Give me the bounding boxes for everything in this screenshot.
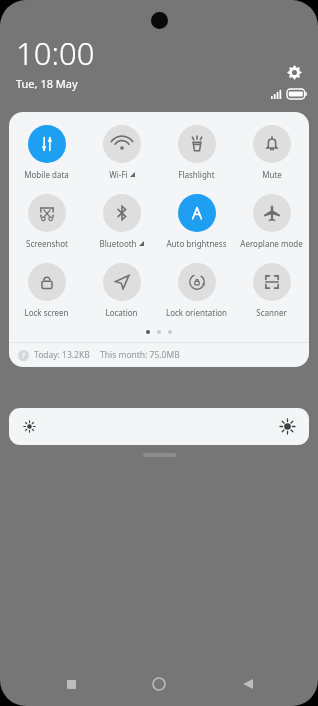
staticText: Screenshot [26,238,68,249]
button[interactable]: Brightness [9,408,309,445]
staticText: Today: 13.2KB [34,349,90,361]
staticText: 10:00 [16,32,95,74]
button[interactable]: Flashlight [159,123,234,182]
button[interactable]: ? [9,343,309,367]
button[interactable]: Screenshot [9,192,84,251]
button[interactable]: Bluetooth [84,192,159,251]
button[interactable]: Mute [234,123,309,182]
staticText: Mute [262,169,282,180]
button[interactable]: Mobile data [9,123,84,182]
staticText: Scanner [256,307,287,318]
staticText: Wi-Fi [109,169,128,180]
staticText: Mobile data [24,169,69,180]
button[interactable]: Recents [53,666,89,702]
staticText: Location [105,307,138,318]
staticText: Lock screen [24,307,69,318]
staticText: Aeroplane mode [240,238,303,249]
button[interactable]: Auto brightness [159,192,234,251]
button[interactable]: Home [141,666,177,702]
button[interactable]: Wi-Fi [84,123,159,182]
button[interactable]: Location [84,261,159,320]
staticText: Tue, 18 May [16,76,78,91]
staticText: Bluetooth [99,238,137,249]
staticText: ? [22,351,26,361]
button[interactable]: Back [230,666,266,702]
button[interactable]: Aeroplane mode [234,192,309,251]
button[interactable]: Scanner [234,261,309,320]
staticText: Lock orientation [166,307,227,318]
button[interactable]: Settings [280,58,308,86]
staticText: This month: 75.0MB [100,349,180,361]
staticText: Flashlight [178,169,215,180]
button[interactable]: Lock orientation [159,261,234,320]
staticText: Auto brightness [166,238,227,249]
button[interactable]: Lock screen [9,261,84,320]
